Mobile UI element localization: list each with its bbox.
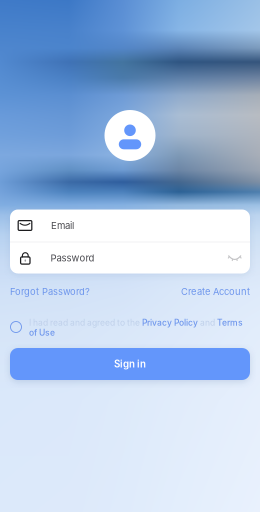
button[interactable]: Create Account (181, 284, 250, 298)
button[interactable]: Forgot Password? (10, 284, 90, 298)
staticText: Password (50, 252, 94, 264)
staticText: Privacy Policy (142, 317, 198, 328)
button[interactable]: Sign in (10, 348, 250, 380)
staticText: Terms (217, 317, 243, 328)
button[interactable]: Agree to terms (10, 321, 21, 332)
button[interactable]: Email (10, 209, 250, 241)
staticText: Forgot Password? (10, 286, 90, 297)
staticText: Sign in (114, 358, 146, 370)
staticText: Create Account (181, 286, 250, 297)
button[interactable]: Privacy Policy (142, 317, 198, 328)
staticText: and (198, 317, 217, 328)
button[interactable]: of Use (29, 326, 55, 339)
staticText: I had read and agreed to the (29, 317, 142, 328)
staticText: of Use (29, 327, 55, 338)
button[interactable]: Terms (217, 317, 243, 328)
staticText: Email (51, 220, 74, 231)
button[interactable]: Password (10, 242, 250, 273)
